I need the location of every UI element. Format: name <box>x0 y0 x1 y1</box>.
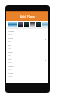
button[interactable]: Photo <box>8 22 17 27</box>
staticText: Add Place <box>20 15 35 19</box>
button[interactable]: Photo <box>18 22 23 27</box>
staticText: Note <box>8 72 14 75</box>
button[interactable]: Photo <box>42 22 48 27</box>
staticText: Text <box>8 33 13 35</box>
staticText: Tel <box>8 44 11 47</box>
button[interactable]: Cat <box>6 57 48 64</box>
button[interactable]: Web <box>6 50 48 57</box>
button[interactable]: Name <box>6 29 48 36</box>
staticText: Hrs <box>8 68 12 70</box>
staticText: Cat <box>8 58 12 61</box>
staticText: Type <box>8 37 13 40</box>
button[interactable]: Note <box>6 71 48 78</box>
staticText: Pick <box>8 61 13 63</box>
staticText: Open <box>8 65 14 68</box>
button[interactable]: Photo <box>30 22 35 27</box>
button[interactable]: Open <box>6 64 48 71</box>
staticText: No. <box>8 47 12 49</box>
staticText: Set <box>8 40 12 42</box>
staticText: Web <box>8 51 13 54</box>
staticText: url <box>8 54 11 56</box>
staticText: Add <box>8 75 13 77</box>
button[interactable]: Type <box>6 36 48 43</box>
button[interactable]: Photo <box>36 22 41 27</box>
button[interactable]: Tel <box>6 43 48 50</box>
staticText: Name <box>8 30 15 33</box>
button[interactable]: Photo <box>24 22 29 27</box>
